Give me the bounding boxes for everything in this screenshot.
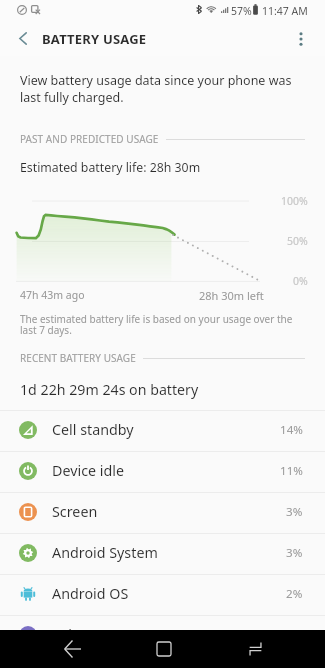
button[interactable]: Home	[144, 630, 184, 668]
staticText: 1d 22h 29m 24s on battery	[20, 380, 199, 399]
staticText: 3%	[286, 545, 303, 561]
staticText: Device idle	[52, 461, 125, 480]
button[interactable]: More options	[284, 22, 317, 55]
staticText: 11:47 AM	[262, 4, 308, 18]
button[interactable]: Navigate up	[6, 22, 39, 55]
staticText: 28h 30m left	[199, 288, 264, 303]
staticText: PAST AND PREDICTED USAGE	[20, 132, 159, 146]
button[interactable]: Recent apps	[235, 630, 275, 668]
button[interactable]: Screen	[0, 493, 325, 533]
button[interactable]: Cell standby	[0, 411, 325, 451]
staticText: 2%	[286, 586, 303, 602]
staticText: 47h 43m ago	[20, 288, 85, 302]
staticText: Android System	[52, 543, 158, 562]
button[interactable]: Android System	[0, 534, 325, 574]
staticText: 50%	[287, 234, 308, 248]
button[interactable]: Back	[52, 630, 92, 668]
staticText: 0%	[293, 274, 308, 288]
staticText: 100%	[281, 194, 308, 208]
staticText: 57%	[231, 4, 252, 18]
staticText: 1%	[286, 627, 303, 643]
staticText: 3%	[286, 504, 303, 520]
staticText: 11%	[280, 463, 303, 479]
staticText: BATTERY USAGE	[42, 30, 147, 48]
button[interactable]: Device idle	[0, 452, 325, 492]
staticText: Other	[52, 625, 92, 644]
staticText: Screen	[52, 502, 98, 521]
staticText: 14%	[280, 422, 303, 438]
staticText: The estimated battery life is based on y…	[20, 312, 301, 337]
staticText: Estimated battery life: 28h 30m	[20, 159, 201, 176]
button[interactable]: Android OS	[0, 575, 325, 615]
staticText: RECENT BATTERY USAGE	[20, 351, 136, 365]
staticText: Android OS	[52, 584, 129, 603]
staticText: Cell standby	[52, 420, 134, 439]
staticText: View battery usage data since your phone…	[20, 72, 297, 106]
button[interactable]: Other	[0, 616, 325, 656]
